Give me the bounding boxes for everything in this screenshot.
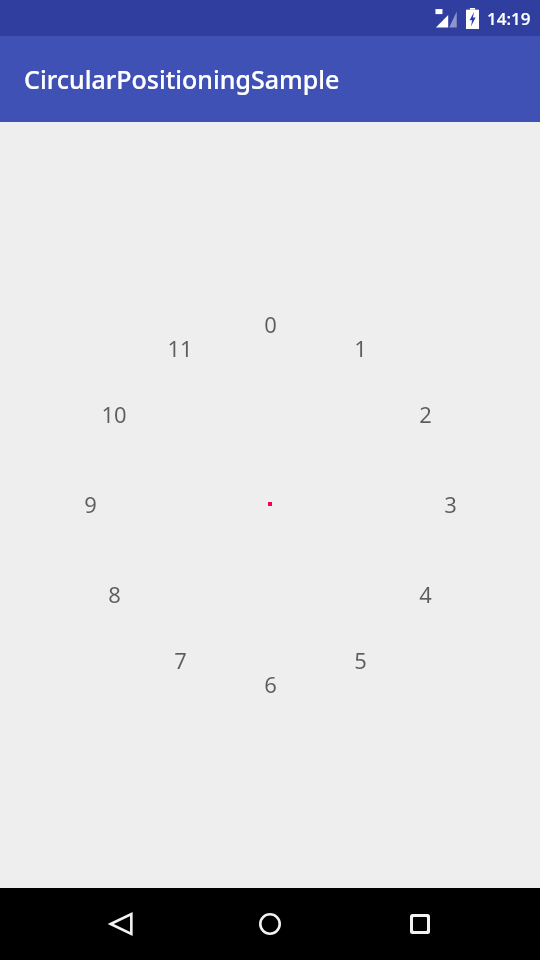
staticText: 14:19 — [487, 7, 531, 30]
staticText: 0 — [264, 309, 277, 339]
staticText: 6 — [264, 669, 277, 699]
staticText: 5 — [354, 645, 367, 675]
staticText: 8 — [108, 579, 121, 609]
button[interactable]: Back — [97, 900, 145, 948]
button[interactable]: 1 — [354, 333, 367, 363]
button[interactable]: 7 — [174, 645, 187, 675]
button[interactable]: 9 — [84, 489, 97, 519]
staticText: 10 — [101, 399, 127, 429]
staticText: 2 — [419, 399, 432, 429]
button[interactable]: Recent apps — [396, 900, 444, 948]
button[interactable]: 6 — [264, 669, 277, 699]
staticText: 7 — [174, 645, 187, 675]
staticText: CircularPositioningSample — [24, 62, 340, 96]
button[interactable]: 3 — [444, 489, 457, 519]
staticText: 11 — [167, 333, 193, 363]
button[interactable]: 5 — [354, 645, 367, 675]
staticText: 4 — [419, 579, 432, 609]
button[interactable]: 10 — [101, 399, 127, 429]
button[interactable]: 11 — [167, 333, 193, 363]
staticText: 1 — [354, 333, 367, 363]
button[interactable]: Home — [246, 900, 294, 948]
button[interactable]: 8 — [108, 579, 121, 609]
staticText: 3 — [444, 489, 457, 519]
button[interactable]: 4 — [419, 579, 432, 609]
button[interactable]: 2 — [419, 399, 432, 429]
staticText: 9 — [84, 489, 97, 519]
button[interactable]: 0 — [264, 309, 277, 339]
